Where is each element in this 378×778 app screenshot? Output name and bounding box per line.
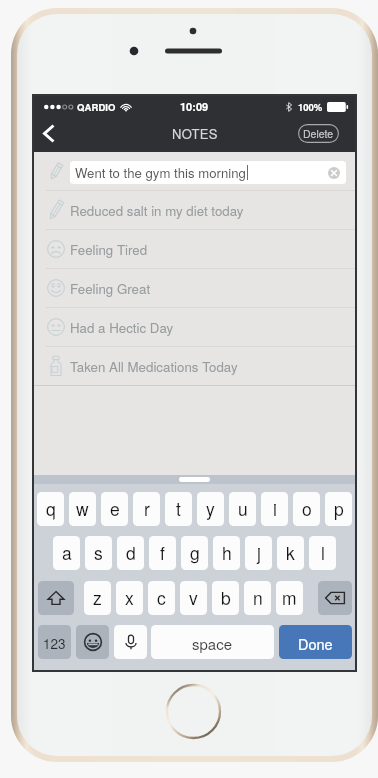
staticText: u (238, 496, 248, 521)
button[interactable]: n (244, 581, 271, 615)
button[interactable]: v (180, 581, 207, 615)
button[interactable]: d (117, 536, 144, 570)
button[interactable]: m (276, 581, 303, 615)
staticText: Done (298, 633, 333, 654)
button[interactable]: k (277, 536, 304, 570)
staticText: z (93, 585, 102, 610)
staticText: Had a Hectic Day (70, 318, 174, 337)
staticText: q (46, 496, 56, 521)
button[interactable]: q (37, 492, 64, 526)
staticText: Reduced salt in my diet today (70, 201, 244, 220)
button[interactable]: l (309, 536, 336, 570)
button[interactable]: w (69, 492, 96, 526)
button[interactable]: r (133, 492, 160, 526)
button[interactable]: Shift (38, 581, 74, 615)
staticText: l (321, 540, 325, 565)
button[interactable]: s (85, 536, 112, 570)
staticText: v (189, 585, 198, 610)
button[interactable]: y (197, 492, 224, 526)
staticText: o (302, 496, 312, 521)
staticText: i (273, 496, 277, 521)
button[interactable]: u (229, 492, 256, 526)
button[interactable]: h (213, 536, 240, 570)
staticText: QARDIO (77, 100, 116, 114)
button[interactable]: z (84, 581, 111, 615)
staticText: a (62, 540, 72, 565)
button[interactable]: space (151, 625, 274, 659)
button[interactable]: a (53, 536, 80, 570)
button[interactable]: i (261, 492, 288, 526)
button[interactable]: Feeling Tired (34, 230, 355, 269)
staticText: p (334, 496, 344, 521)
staticText: n (253, 585, 263, 610)
staticText: Went to the gym this morning (75, 163, 246, 182)
button[interactable]: Back (33, 118, 65, 148)
button[interactable]: Done (279, 625, 352, 659)
staticText: space (192, 633, 233, 654)
button[interactable]: e (101, 492, 128, 526)
staticText: t (176, 496, 181, 521)
button[interactable]: b (212, 581, 239, 615)
staticText: 123 (43, 634, 66, 653)
staticText: NOTES (172, 124, 218, 143)
staticText: d (126, 540, 136, 565)
button[interactable]: x (116, 581, 143, 615)
staticText: c (157, 585, 166, 610)
button[interactable]: Went to the gym this morning (70, 161, 346, 184)
button[interactable]: c (148, 581, 175, 615)
staticText: m (282, 585, 297, 610)
staticText: Taken All Medications Today (70, 357, 238, 376)
staticText: Feeling Great (70, 279, 151, 298)
staticText: f (160, 540, 165, 565)
button[interactable]: o (293, 492, 320, 526)
staticText: y (206, 496, 215, 521)
button[interactable]: g (181, 536, 208, 570)
button[interactable]: t (165, 492, 192, 526)
button[interactable]: Emoji (76, 625, 109, 659)
staticText: Feeling Tired (70, 240, 148, 259)
button[interactable]: Taken All Medications Today (34, 347, 355, 386)
button[interactable]: Delete (298, 124, 339, 143)
button[interactable]: Had a Hectic Day (34, 308, 355, 347)
staticText: h (222, 540, 232, 565)
staticText: j (257, 540, 261, 565)
staticText: x (125, 585, 134, 610)
button[interactable]: Feeling Great (34, 269, 355, 308)
button[interactable]: Dictate (114, 625, 147, 659)
staticText: r (144, 496, 150, 521)
button[interactable]: j (245, 536, 272, 570)
staticText: Delete (303, 126, 334, 141)
staticText: w (76, 496, 89, 521)
staticText: 10:09 (180, 99, 209, 115)
staticText: 100% (298, 100, 323, 114)
button[interactable]: f (149, 536, 176, 570)
staticText: s (94, 540, 103, 565)
staticText: g (190, 540, 200, 565)
staticText: b (221, 585, 231, 610)
button[interactable]: Backspace (318, 581, 352, 615)
button[interactable]: 123 (38, 625, 71, 659)
button[interactable]: Reduced salt in my diet today (34, 191, 355, 230)
button[interactable]: p (325, 492, 352, 526)
staticText: k (286, 540, 295, 565)
staticText: e (110, 496, 120, 521)
